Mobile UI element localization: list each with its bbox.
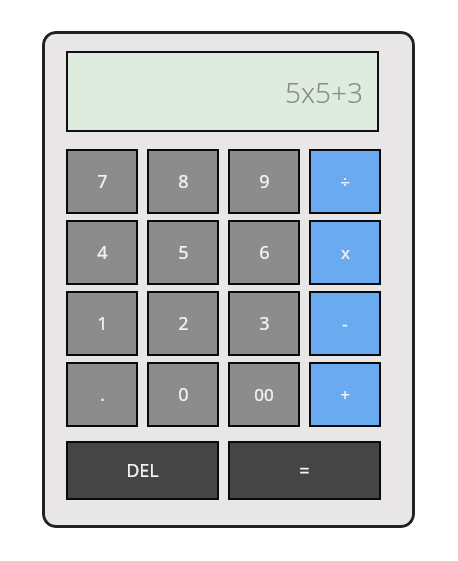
staticText: 00 — [254, 383, 274, 406]
button[interactable]: 2 — [147, 291, 219, 356]
button[interactable]: = — [228, 441, 381, 500]
staticText: 2 — [178, 311, 189, 336]
button[interactable]: DEL — [66, 441, 219, 500]
staticText: 5x5+3 — [284, 73, 363, 111]
button[interactable]: 1 — [66, 291, 138, 356]
staticText: + — [340, 383, 350, 406]
staticText: ÷ — [340, 170, 350, 193]
button[interactable]: . — [66, 362, 138, 427]
staticText: 3 — [259, 311, 270, 336]
staticText: = — [299, 458, 310, 483]
button[interactable]: - — [309, 291, 381, 356]
button[interactable]: 5 — [147, 220, 219, 285]
staticText: 0 — [178, 382, 189, 407]
button[interactable]: ÷ — [309, 149, 381, 214]
button[interactable]: 4 — [66, 220, 138, 285]
button[interactable]: 0 — [147, 362, 219, 427]
button[interactable]: 3 — [228, 291, 300, 356]
staticText: 8 — [178, 169, 189, 194]
button[interactable]: 6 — [228, 220, 300, 285]
staticText: 7 — [97, 169, 108, 194]
button[interactable]: 9 — [228, 149, 300, 214]
button[interactable]: 8 — [147, 149, 219, 214]
button[interactable]: + — [309, 362, 381, 427]
staticText: 5 — [178, 240, 189, 265]
staticText: 9 — [259, 169, 270, 194]
staticText: DEL — [126, 458, 159, 483]
button[interactable]: x — [309, 220, 381, 285]
staticText: 6 — [259, 240, 270, 265]
button[interactable]: 00 — [228, 362, 300, 427]
staticText: . — [100, 383, 105, 406]
staticText: 1 — [97, 311, 108, 336]
staticText: x — [341, 241, 350, 264]
staticText: - — [342, 312, 348, 335]
button[interactable]: 7 — [66, 149, 138, 214]
staticText: 4 — [97, 240, 108, 265]
